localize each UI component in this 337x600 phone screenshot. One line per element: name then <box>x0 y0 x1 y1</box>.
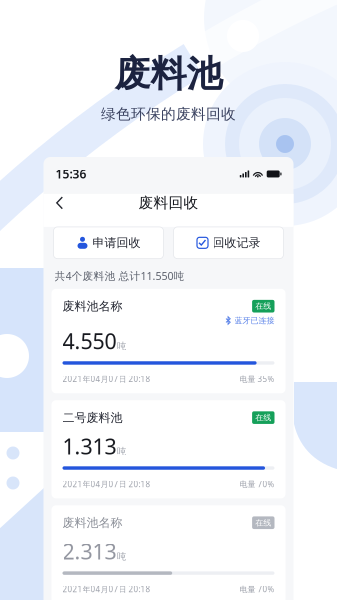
staticText: 电量 35% <box>239 374 274 384</box>
staticText: 废料池名称 <box>62 515 122 530</box>
staticText: 在线 <box>255 413 271 422</box>
staticText: 吨 <box>117 340 126 352</box>
staticText: 在线 <box>255 301 271 311</box>
staticText: 1.313 <box>62 432 116 460</box>
staticText: 废料回收 <box>138 194 198 212</box>
button[interactable]: 废料池名称 <box>51 505 285 600</box>
staticText: 2.313 <box>62 537 116 565</box>
staticText: 蓝牙已连接 <box>234 316 274 325</box>
staticText: 2021年04月07日 20:18 <box>62 374 150 384</box>
staticText: 申请回收 <box>92 235 140 250</box>
staticText: 吨 <box>117 551 126 562</box>
staticText: 废料池名称 <box>62 299 122 313</box>
staticText: 绿色环保的废料回收 <box>101 105 236 123</box>
button[interactable]: 二号废料池 <box>51 400 285 498</box>
staticText: 电量 70% <box>239 479 274 489</box>
button[interactable]: 返回 <box>55 193 73 213</box>
staticText: 二号废料池 <box>62 410 122 425</box>
staticText: 2021年04月07日 20:18 <box>62 479 150 489</box>
staticText: 吨 <box>117 446 126 457</box>
staticText: 15:36 <box>55 166 86 182</box>
staticText: 2021年04月07日 20:18 <box>62 584 150 594</box>
button[interactable]: 回收记录 <box>173 227 283 259</box>
staticText: 回收记录 <box>212 235 260 250</box>
button[interactable]: 废料池名称 <box>51 289 285 393</box>
staticText: 4.550 <box>62 327 116 355</box>
button[interactable]: 申请回收 <box>53 227 163 259</box>
staticText: 电量 70% <box>239 584 274 594</box>
staticText: 共4个废料池 总计11.550吨 <box>54 269 184 283</box>
staticText: 废料池 <box>114 52 222 96</box>
staticText: 在线 <box>255 518 271 528</box>
